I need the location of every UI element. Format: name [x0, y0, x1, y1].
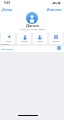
staticText: Семья — [21, 40, 28, 43]
staticText: Найти — [5, 40, 12, 43]
button[interactable]: Изменить — [46, 8, 63, 12]
staticText: Данил — [26, 23, 39, 28]
staticText: СЕМЬЯ — [1, 43, 9, 46]
staticText: Apple ID, iCloud, Медиа — [20, 28, 45, 31]
button[interactable]: Назад — [1, 8, 13, 12]
staticText: Настроить — [1, 47, 14, 50]
staticText: Люди — [37, 40, 43, 43]
staticText: Назад — [3, 8, 13, 12]
button[interactable]: Найти — [1, 33, 15, 44]
staticText: Оплата — [52, 40, 60, 43]
button[interactable]: Profile photo — [26, 12, 38, 24]
staticText: 9:41 — [4, 1, 11, 5]
button[interactable]: Настроить — [0, 46, 64, 52]
button[interactable]: Оплата — [49, 33, 63, 44]
staticText: Изменить — [47, 8, 62, 12]
button[interactable]: Люди — [33, 33, 47, 44]
button[interactable]: Семья — [17, 33, 31, 44]
